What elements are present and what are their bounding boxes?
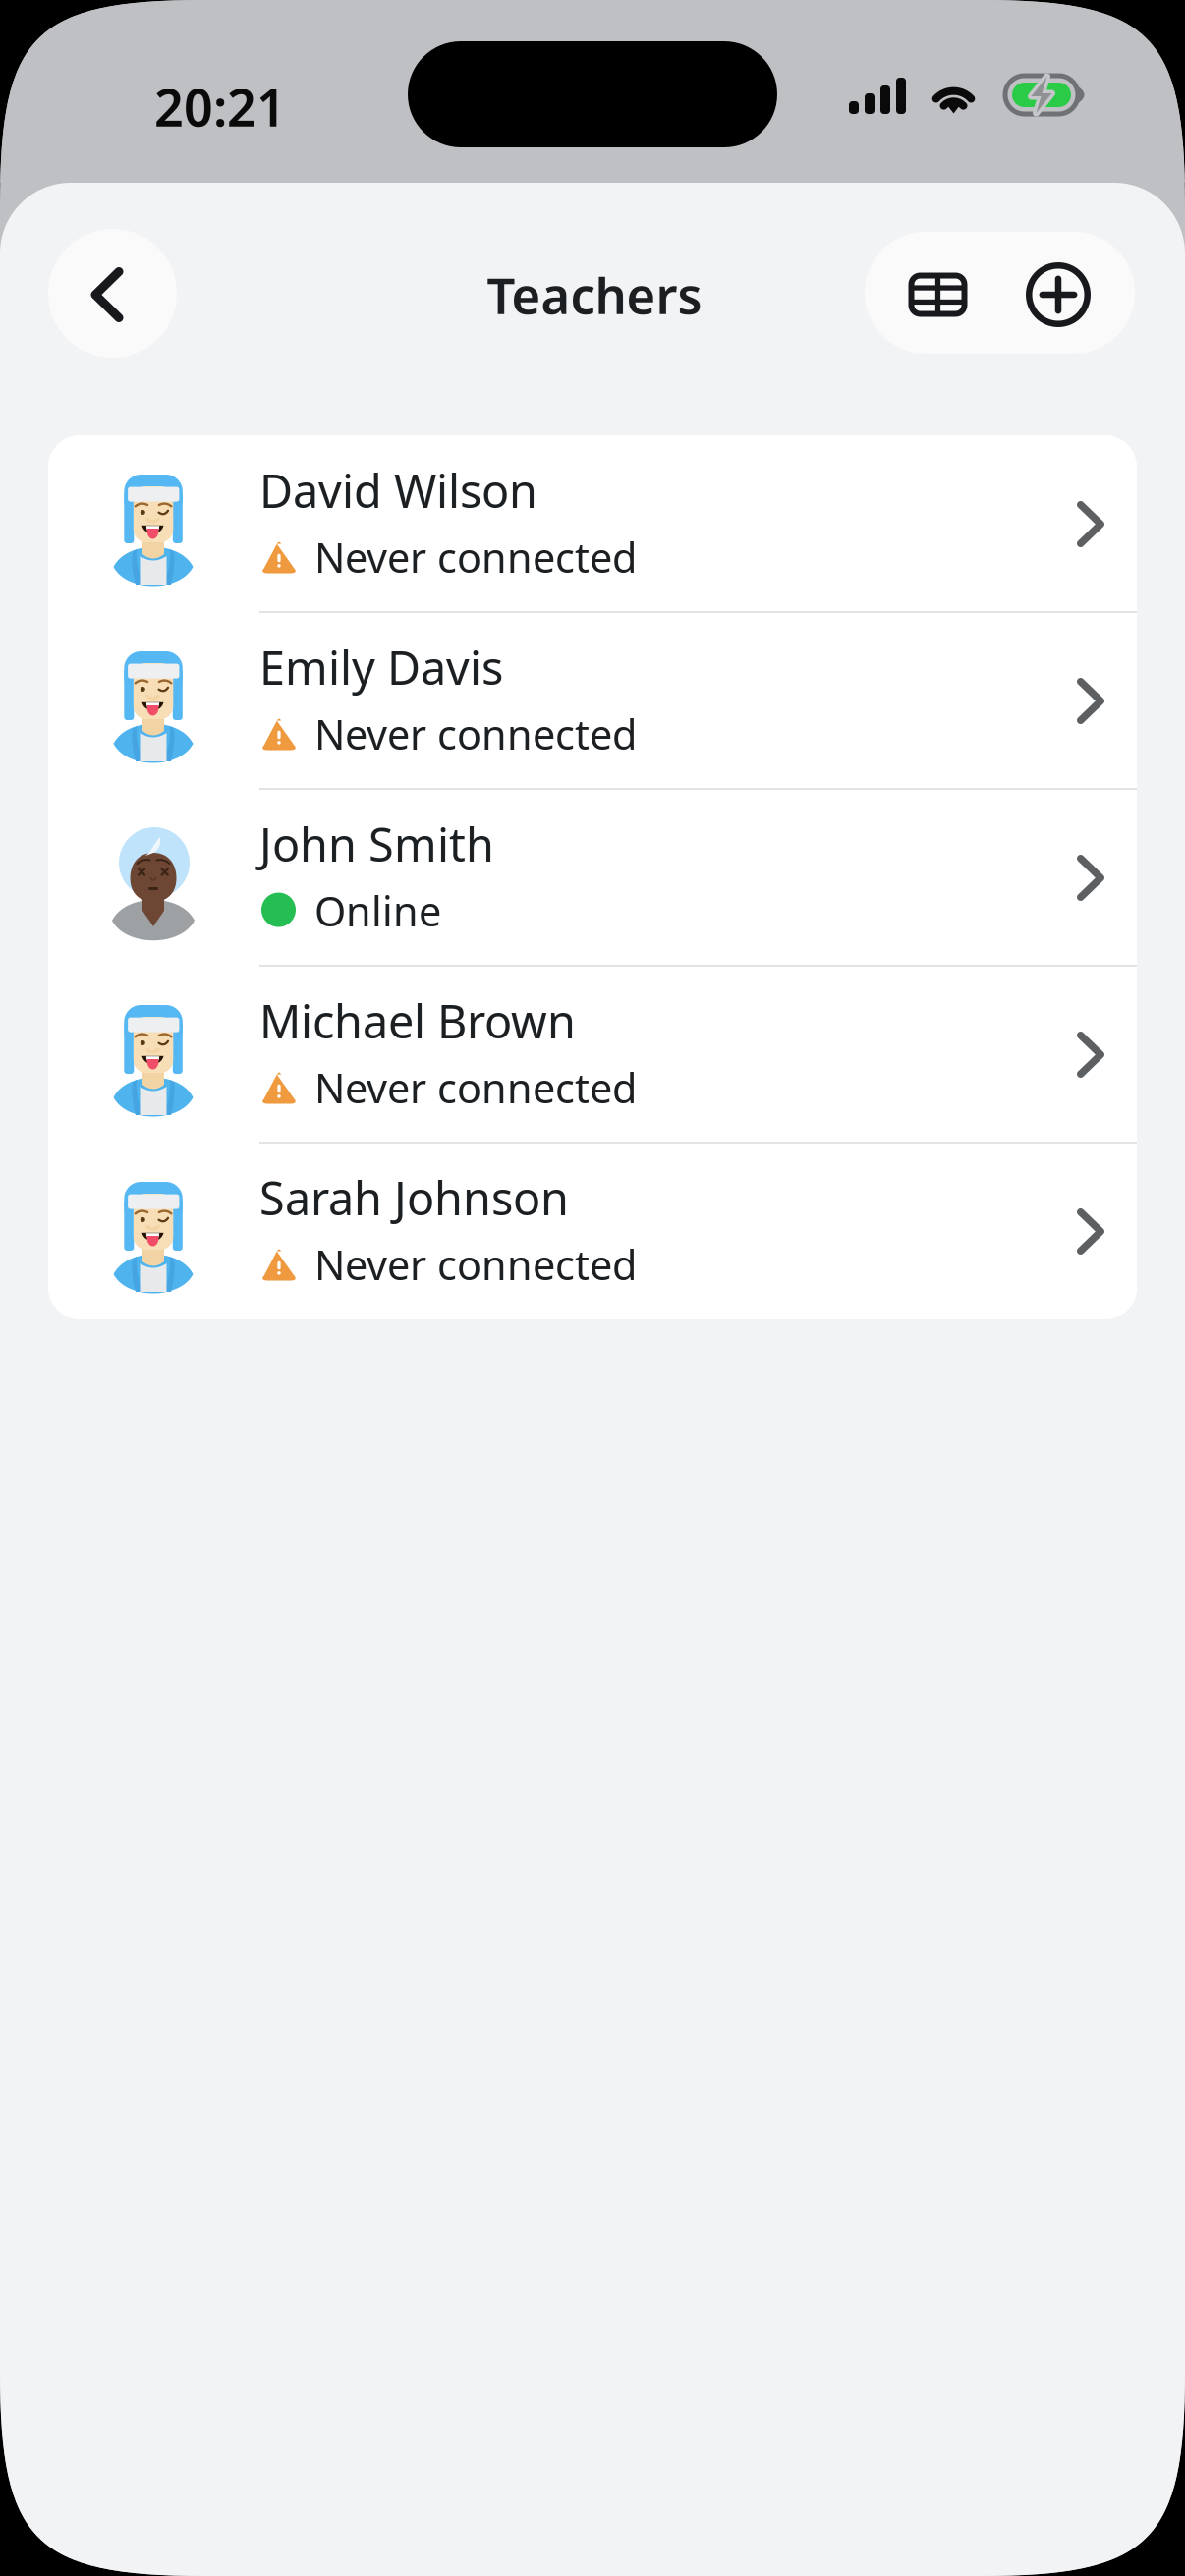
button[interactable]: Emily Davis	[48, 612, 1137, 789]
staticText: David Wilson	[259, 460, 537, 521]
staticText: Sarah Johnson	[259, 1167, 569, 1228]
staticText: Emily Davis	[259, 637, 503, 698]
button[interactable]: David Wilson	[48, 435, 1137, 612]
staticText: Never connected	[314, 707, 637, 761]
staticText: John Smith	[259, 813, 494, 874]
button[interactable]: Sarah Johnson	[48, 1143, 1137, 1319]
button[interactable]: Grid view	[865, 232, 996, 354]
staticText: Never connected	[314, 1061, 637, 1115]
staticText: Michael Brown	[259, 990, 576, 1051]
staticText: Teachers	[487, 262, 702, 328]
staticText: 20:21	[154, 73, 286, 141]
button[interactable]: John Smith	[48, 789, 1137, 966]
button[interactable]: Back	[48, 229, 177, 358]
staticText: Never connected	[314, 1238, 637, 1291]
button[interactable]: Michael Brown	[48, 966, 1137, 1143]
button[interactable]: Add teacher	[996, 232, 1135, 354]
staticText: Online	[314, 884, 441, 938]
staticText: Never connected	[314, 530, 637, 584]
